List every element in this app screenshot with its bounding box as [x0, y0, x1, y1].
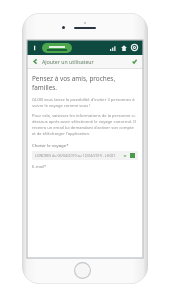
staticText: LONDRES du 06/04/2019 au 12/04/2019 - LH… [35, 153, 116, 158]
staticText: Ajouter un utilisateur [42, 58, 94, 65]
staticText: Pensez à vos amis, proches, familles. [32, 74, 138, 92]
staticText: Pour cela, saisissez les informations de… [32, 113, 138, 137]
button[interactable]: Signal [108, 43, 117, 52]
button[interactable]: LONDRES du 06/04/2019 au 12/04/2019 - LH… [32, 151, 138, 160]
button[interactable]: Settings [130, 43, 139, 52]
button[interactable]: Back [31, 57, 40, 66]
staticText: E-mail* [32, 164, 47, 170]
staticText: GLOB vous laisse la possibilité d'invite… [32, 97, 138, 109]
button[interactable]: Menu [31, 44, 39, 52]
button[interactable]: Valider [130, 57, 139, 66]
button[interactable]: Ajouter un utilisateur [42, 58, 130, 65]
other: Home button [74, 262, 91, 279]
button[interactable]: Home [119, 43, 128, 52]
staticText: Choisir le voyage* [32, 142, 69, 148]
button[interactable]: Logo [42, 43, 72, 53]
